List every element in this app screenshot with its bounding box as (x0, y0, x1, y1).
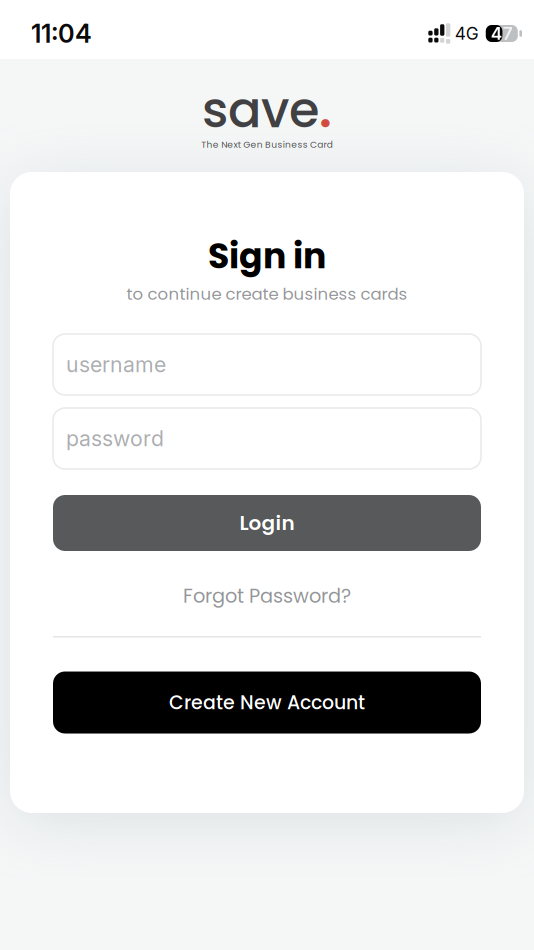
button[interactable]: password (53, 408, 481, 469)
staticText: Sign in (208, 232, 326, 280)
staticText: 47 (491, 23, 513, 44)
staticText: 4G (455, 23, 479, 44)
staticText: Create New Account (169, 689, 365, 716)
staticText: The Next Gen Business Card (201, 138, 333, 151)
staticText: 11:04 (31, 18, 92, 49)
staticText: password (66, 426, 164, 451)
staticText: username (66, 352, 166, 377)
button[interactable]: Forgot Password? (53, 572, 481, 620)
staticText: 47 (491, 23, 513, 44)
staticText: Login (239, 509, 294, 537)
staticText: to continue create business cards (126, 282, 407, 305)
button[interactable]: username (53, 334, 481, 395)
staticText: save (202, 75, 319, 145)
button[interactable]: Create New Account (53, 671, 481, 733)
button[interactable]: Login (53, 495, 481, 551)
staticText: . (319, 75, 332, 145)
staticText: Forgot Password? (183, 582, 351, 610)
